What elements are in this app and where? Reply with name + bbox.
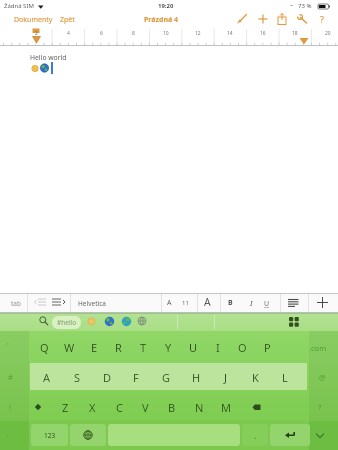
button[interactable]: J [206,367,246,387]
staticText: V [142,400,149,415]
button[interactable]: Q [24,337,64,357]
button[interactable] [52,298,66,307]
staticText: # [8,372,13,382]
button[interactable]: P [247,337,287,357]
button[interactable]: C [99,397,139,417]
button[interactable]: U [173,337,213,357]
button[interactable] [34,403,42,411]
button[interactable]: D [87,367,127,387]
staticText: M [221,400,231,415]
button[interactable]: Zpět [60,15,75,25]
button[interactable]: F [116,367,156,387]
button[interactable] [288,299,299,307]
staticText: 11 [182,299,189,307]
button[interactable] [317,297,328,308]
button[interactable]: A [149,293,189,313]
staticText: R [115,340,122,355]
button[interactable]: M [206,397,246,417]
staticText: tab [11,299,21,308]
staticText: 16 [260,30,266,37]
staticText: Q [40,340,49,355]
button[interactable] [252,404,261,411]
staticText: A [43,370,51,385]
staticText: U [189,340,198,355]
button[interactable] [289,317,300,328]
button[interactable] [258,14,268,24]
button[interactable] [70,424,106,446]
button[interactable] [137,316,147,326]
staticText: ! [9,402,12,412]
staticText: I [216,340,220,355]
staticText: 20 [325,30,331,37]
staticText: 4 [67,30,70,37]
button[interactable]: 123 [31,424,68,446]
button[interactable]: L [265,367,305,387]
button[interactable] [277,13,287,25]
staticText: H [192,370,201,385]
button[interactable]: Helvetica [78,299,106,308]
button[interactable]: Z [45,397,85,417]
staticText: ⌁ [290,2,294,8]
button[interactable]: K [235,367,275,387]
button[interactable]: tab [0,293,36,313]
staticText: 19:20 [158,2,174,10]
button[interactable] [121,316,132,327]
staticText: 6 [100,30,103,37]
staticText: Z [62,400,69,415]
button[interactable]: X [72,397,112,417]
button[interactable]: T [123,337,163,357]
button[interactable] [104,316,115,327]
button[interactable]: H [176,367,216,387]
staticText: 18 [292,30,298,37]
button[interactable]: V [125,397,165,417]
button[interactable]: E [74,337,114,357]
staticText: Žádná SIM [4,2,34,10]
button[interactable]: .com [298,338,338,358]
staticText: L [282,370,288,385]
button[interactable] [236,14,247,24]
button[interactable]: #hello [52,316,81,329]
button[interactable]: S [57,367,97,387]
staticText: 10 [163,30,169,37]
staticText: X [89,400,96,415]
button[interactable]: W [49,337,89,357]
staticText: .com [309,343,327,353]
button[interactable] [270,424,310,446]
staticText: T [140,340,147,355]
button[interactable]: O [222,337,262,357]
staticText: J [224,370,228,385]
button[interactable]: G [146,367,186,387]
staticText: Hello world [30,53,67,62]
staticText: C [116,400,123,415]
button[interactable]: B [210,293,250,313]
button[interactable]: I [250,299,253,309]
staticText: @ [319,372,326,382]
staticText: B [228,298,233,308]
button[interactable] [34,298,47,307]
staticText: W [64,340,75,355]
button[interactable]: Dokumenty [14,15,53,25]
staticText: G [162,370,171,385]
staticText: 123 [44,431,56,440]
staticText: 12 [195,30,201,37]
button[interactable]: Y [148,337,188,357]
staticText: ? [320,13,324,25]
staticText: 8 [132,30,135,37]
button[interactable]: B [152,397,192,417]
button[interactable]: ? [302,9,338,29]
button[interactable]: A [187,292,227,312]
button[interactable]: I [198,337,238,357]
staticText: ' [7,340,9,350]
button[interactable] [316,433,324,439]
button[interactable]: U [264,299,270,309]
staticText: O [238,340,247,355]
button[interactable] [87,317,96,326]
button[interactable]: N [179,397,219,417]
staticText: Prázdná 4 [144,15,178,25]
button[interactable] [297,14,308,24]
staticText: N [195,400,204,415]
button[interactable]: R [98,337,138,357]
button[interactable]: A [27,367,67,387]
